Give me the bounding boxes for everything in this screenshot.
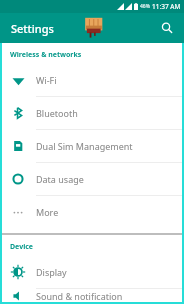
button[interactable]: Sound & notification <box>2 289 182 302</box>
staticText: Settings <box>11 21 54 36</box>
button[interactable]: Search <box>156 17 178 39</box>
button[interactable]: Dual Sim Management <box>2 130 182 162</box>
button[interactable]: Display <box>2 256 182 288</box>
staticText: Sound & notification <box>36 290 123 302</box>
staticText: 11:37 AM <box>152 2 181 11</box>
staticText: Dual Sim Management <box>36 140 133 152</box>
staticText: 46% <box>140 3 150 10</box>
staticText: Device <box>10 242 34 252</box>
staticText: More <box>36 206 59 218</box>
button[interactable]: More <box>2 196 182 228</box>
button[interactable]: Data usage <box>2 163 182 195</box>
button[interactable]: Wi-Fi <box>2 64 182 96</box>
staticText: Data usage <box>36 173 84 185</box>
staticText: Bluetooth <box>36 107 78 119</box>
staticText: Wi-Fi <box>36 74 57 86</box>
button[interactable]: Bluetooth <box>2 97 182 129</box>
staticText: Wireless & networks <box>10 50 82 60</box>
staticText: Display <box>36 266 67 278</box>
